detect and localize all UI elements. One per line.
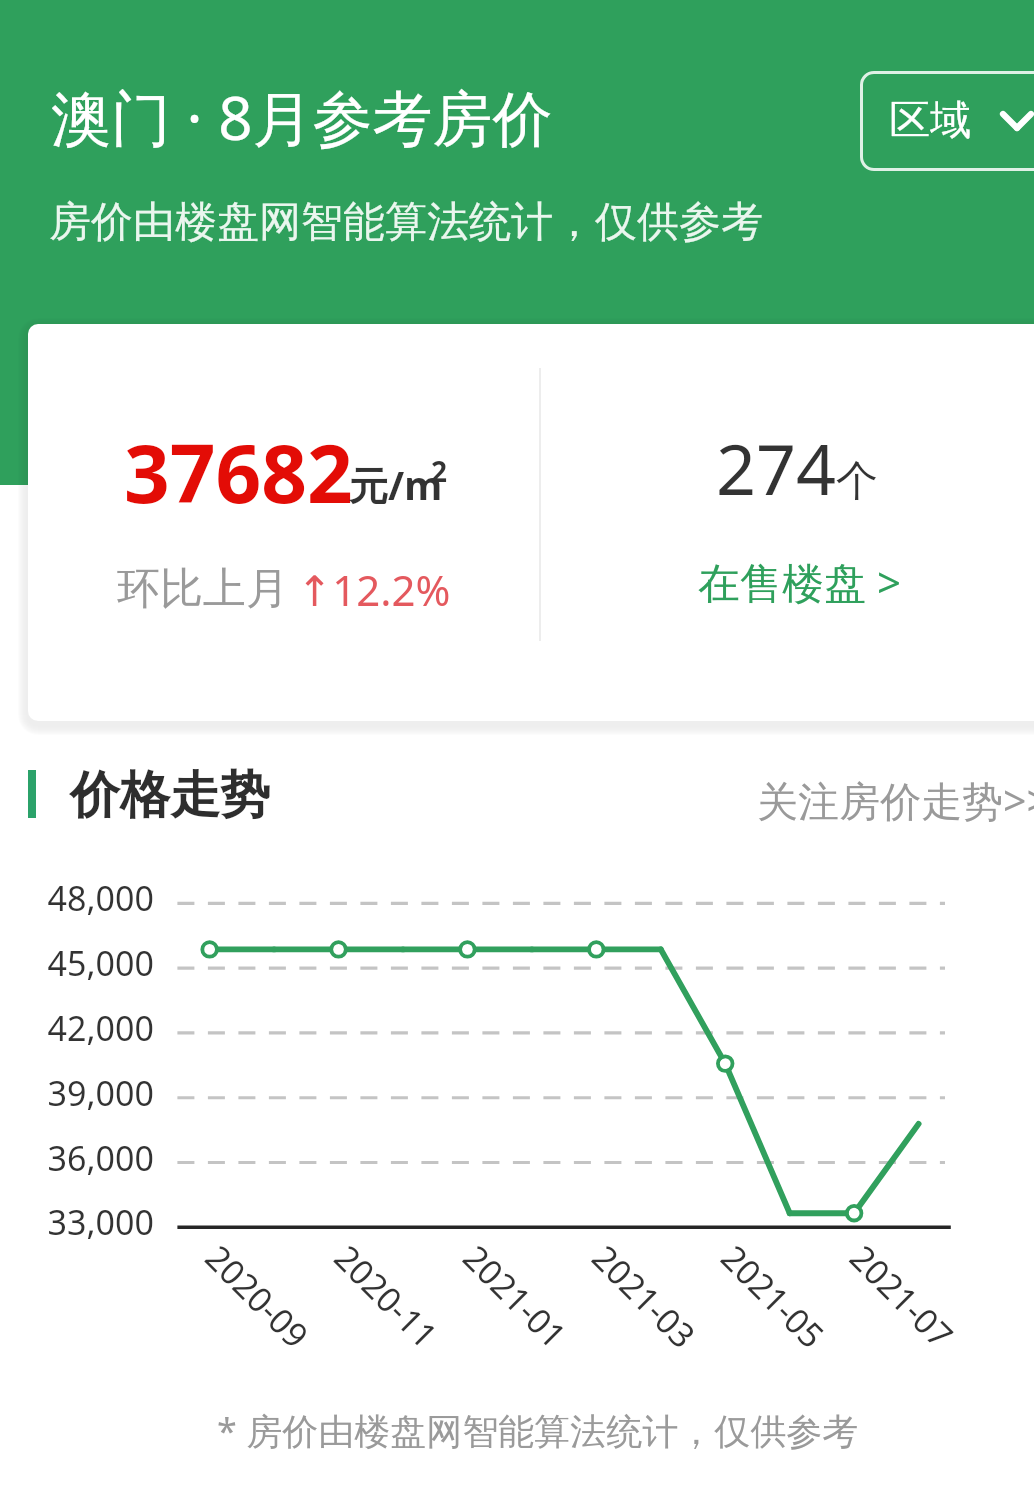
staticText: ↑12.2% — [297, 561, 451, 618]
button[interactable]: 37682 — [40, 336, 535, 709]
staticText: 房价由楼盘网智能算法统计，仅供参考 — [49, 196, 763, 249]
staticText: 37682 — [124, 417, 353, 526]
staticText: 274个 — [716, 420, 879, 515]
staticText: 2 — [431, 452, 448, 490]
button[interactable]: 关注房价走势>> — [757, 772, 1034, 828]
staticText: 环比上月 — [117, 562, 289, 616]
staticText: 澳门 · 8月参考房价 — [51, 76, 553, 158]
staticText: 元/m — [349, 458, 443, 511]
other: Expand region selector — [1000, 111, 1034, 131]
staticText: 区域 — [889, 95, 971, 147]
staticText: * 房价由楼盘网智能算法统计，仅供参考 — [217, 1406, 859, 1455]
staticText: 关注房价走势>> — [757, 772, 1034, 828]
staticText: 在售楼盘 > — [698, 553, 901, 610]
staticText: 价格走势 — [70, 764, 270, 827]
button[interactable]: 274个 — [545, 336, 1034, 709]
button[interactable]: 区域 — [860, 71, 1034, 171]
